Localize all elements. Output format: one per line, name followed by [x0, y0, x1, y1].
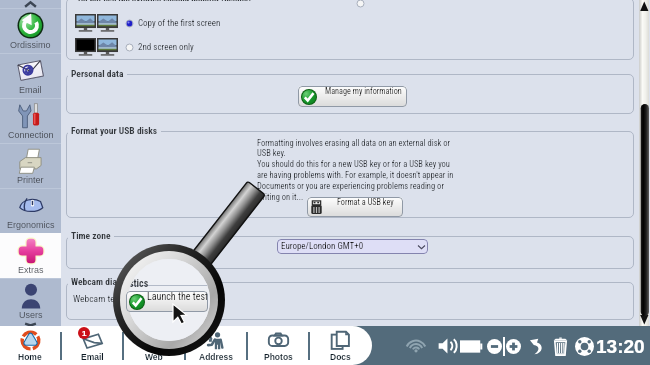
staticText: ostics	[128, 278, 149, 290]
staticText: Do not use the external second monitor (…	[78, 0, 251, 1]
button[interactable]: Docs	[310, 326, 370, 365]
button[interactable]: Back	[529, 337, 545, 355]
staticText: Photos	[264, 352, 293, 361]
staticText: Email	[19, 85, 42, 95]
button[interactable]: Wifi	[405, 335, 427, 357]
staticText: Formatting involves erasing all data on …	[257, 138, 454, 202]
staticText: 1	[82, 329, 87, 338]
button[interactable]: Extras	[0, 233, 61, 278]
staticText: Address	[199, 352, 234, 361]
button[interactable]: Battery	[460, 339, 483, 354]
staticText: Format a USB key	[337, 197, 394, 207]
button[interactable]: Ergonomics	[0, 188, 61, 233]
button[interactable]: Format a USB key	[307, 197, 403, 217]
button[interactable]: Connection	[0, 98, 61, 143]
staticText: Connection	[8, 130, 54, 140]
button[interactable]: Volume up	[506, 339, 521, 354]
button[interactable]: 1	[62, 326, 122, 365]
staticText: Europe/London GMT+0	[281, 241, 364, 252]
staticText: Personal data	[71, 68, 124, 79]
staticText: Email	[81, 352, 104, 361]
staticText: n te	[128, 303, 129, 315]
button[interactable]: Scroll	[635, 0, 649, 326]
staticText: Printer	[17, 175, 44, 185]
button[interactable]: Launch the test	[126, 291, 208, 312]
staticText: Web	[145, 352, 163, 361]
button[interactable]: Web	[124, 326, 184, 365]
button[interactable]: Volume down	[487, 339, 502, 354]
staticText: Copy of the first screen	[138, 18, 221, 29]
button[interactable]: Volume	[436, 335, 458, 357]
button[interactable]: Home	[0, 326, 60, 365]
staticText: Ergonomics	[7, 220, 55, 230]
staticText: 13:20	[596, 336, 645, 357]
staticText: Format your USB disks	[71, 125, 158, 136]
staticText: Launch the test	[151, 288, 201, 298]
staticText: Users	[19, 310, 43, 320]
staticText: Time zone	[71, 230, 111, 241]
button[interactable]: Printer	[0, 143, 61, 188]
staticText: 2nd screen only	[138, 42, 194, 53]
button[interactable]: Europe/London GMT+0	[277, 239, 428, 254]
button[interactable]: Ordissimo	[0, 8, 61, 53]
staticText: Ordissimo	[10, 40, 51, 50]
button[interactable]: Trash	[553, 337, 568, 356]
button[interactable]: Manage my information	[298, 86, 407, 107]
staticText: Docs	[330, 352, 351, 361]
staticText: Manage my information	[325, 86, 402, 96]
staticText: Home	[18, 352, 42, 361]
button[interactable]: Users	[0, 278, 61, 323]
staticText: Webcam test	[73, 293, 122, 304]
staticText: Webcam diagnostics	[71, 276, 150, 287]
button[interactable]: Email	[0, 53, 61, 98]
button[interactable]: Address	[186, 326, 246, 365]
button[interactable]: Photos	[248, 326, 308, 365]
staticText: Extras	[18, 265, 44, 275]
staticText: Launch the test	[147, 291, 208, 303]
button[interactable]: Launch the test	[123, 288, 209, 308]
button[interactable]: Help	[575, 337, 594, 356]
